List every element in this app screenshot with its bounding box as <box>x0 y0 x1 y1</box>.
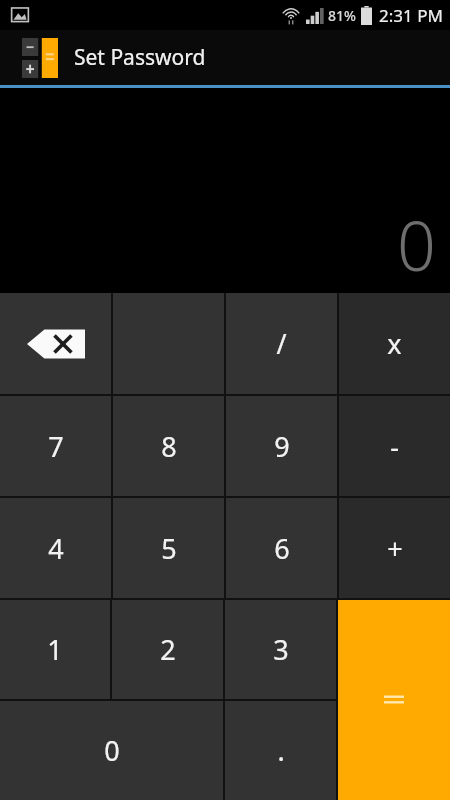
button[interactable]: 7 <box>0 396 111 496</box>
staticText: 3 <box>273 631 289 668</box>
button[interactable]: 0 <box>0 701 223 800</box>
staticText: x <box>387 325 402 362</box>
staticText: 0 <box>104 732 120 769</box>
staticText: 0 <box>397 198 436 291</box>
button[interactable]: 4 <box>0 498 111 598</box>
button[interactable]: Backspace <box>0 293 111 394</box>
button[interactable]: 3 <box>225 600 336 699</box>
button[interactable]: + <box>339 498 450 598</box>
button[interactable]: Equals <box>338 600 450 800</box>
button[interactable]: . <box>225 701 336 800</box>
staticText: 9 <box>274 428 290 465</box>
staticText: 2 <box>160 631 176 668</box>
staticText: - <box>390 428 399 465</box>
button[interactable]: 6 <box>226 498 337 598</box>
button[interactable]: / <box>226 293 337 394</box>
staticText: 5 <box>161 530 177 567</box>
staticText: Set Password <box>74 43 206 72</box>
button[interactable]: 5 <box>113 498 224 598</box>
button[interactable]: x <box>339 293 450 394</box>
staticText: 4 <box>48 530 64 567</box>
staticText: 2:31 PM <box>379 4 443 27</box>
staticText: 1 <box>47 631 63 668</box>
staticText: . <box>277 732 285 769</box>
button[interactable]: Set Password <box>0 30 450 85</box>
button[interactable]: 1 <box>0 600 110 699</box>
staticText: 6 <box>274 530 290 567</box>
button[interactable]: 8 <box>113 396 224 496</box>
staticText: 8 <box>161 428 177 465</box>
staticText: / <box>276 325 287 362</box>
button[interactable]: 2 <box>112 600 223 699</box>
staticText: 81% <box>328 6 356 25</box>
button[interactable]: - <box>339 396 450 496</box>
button[interactable]: 9 <box>226 396 337 496</box>
staticText: 7 <box>48 428 64 465</box>
staticText: + <box>387 530 403 567</box>
